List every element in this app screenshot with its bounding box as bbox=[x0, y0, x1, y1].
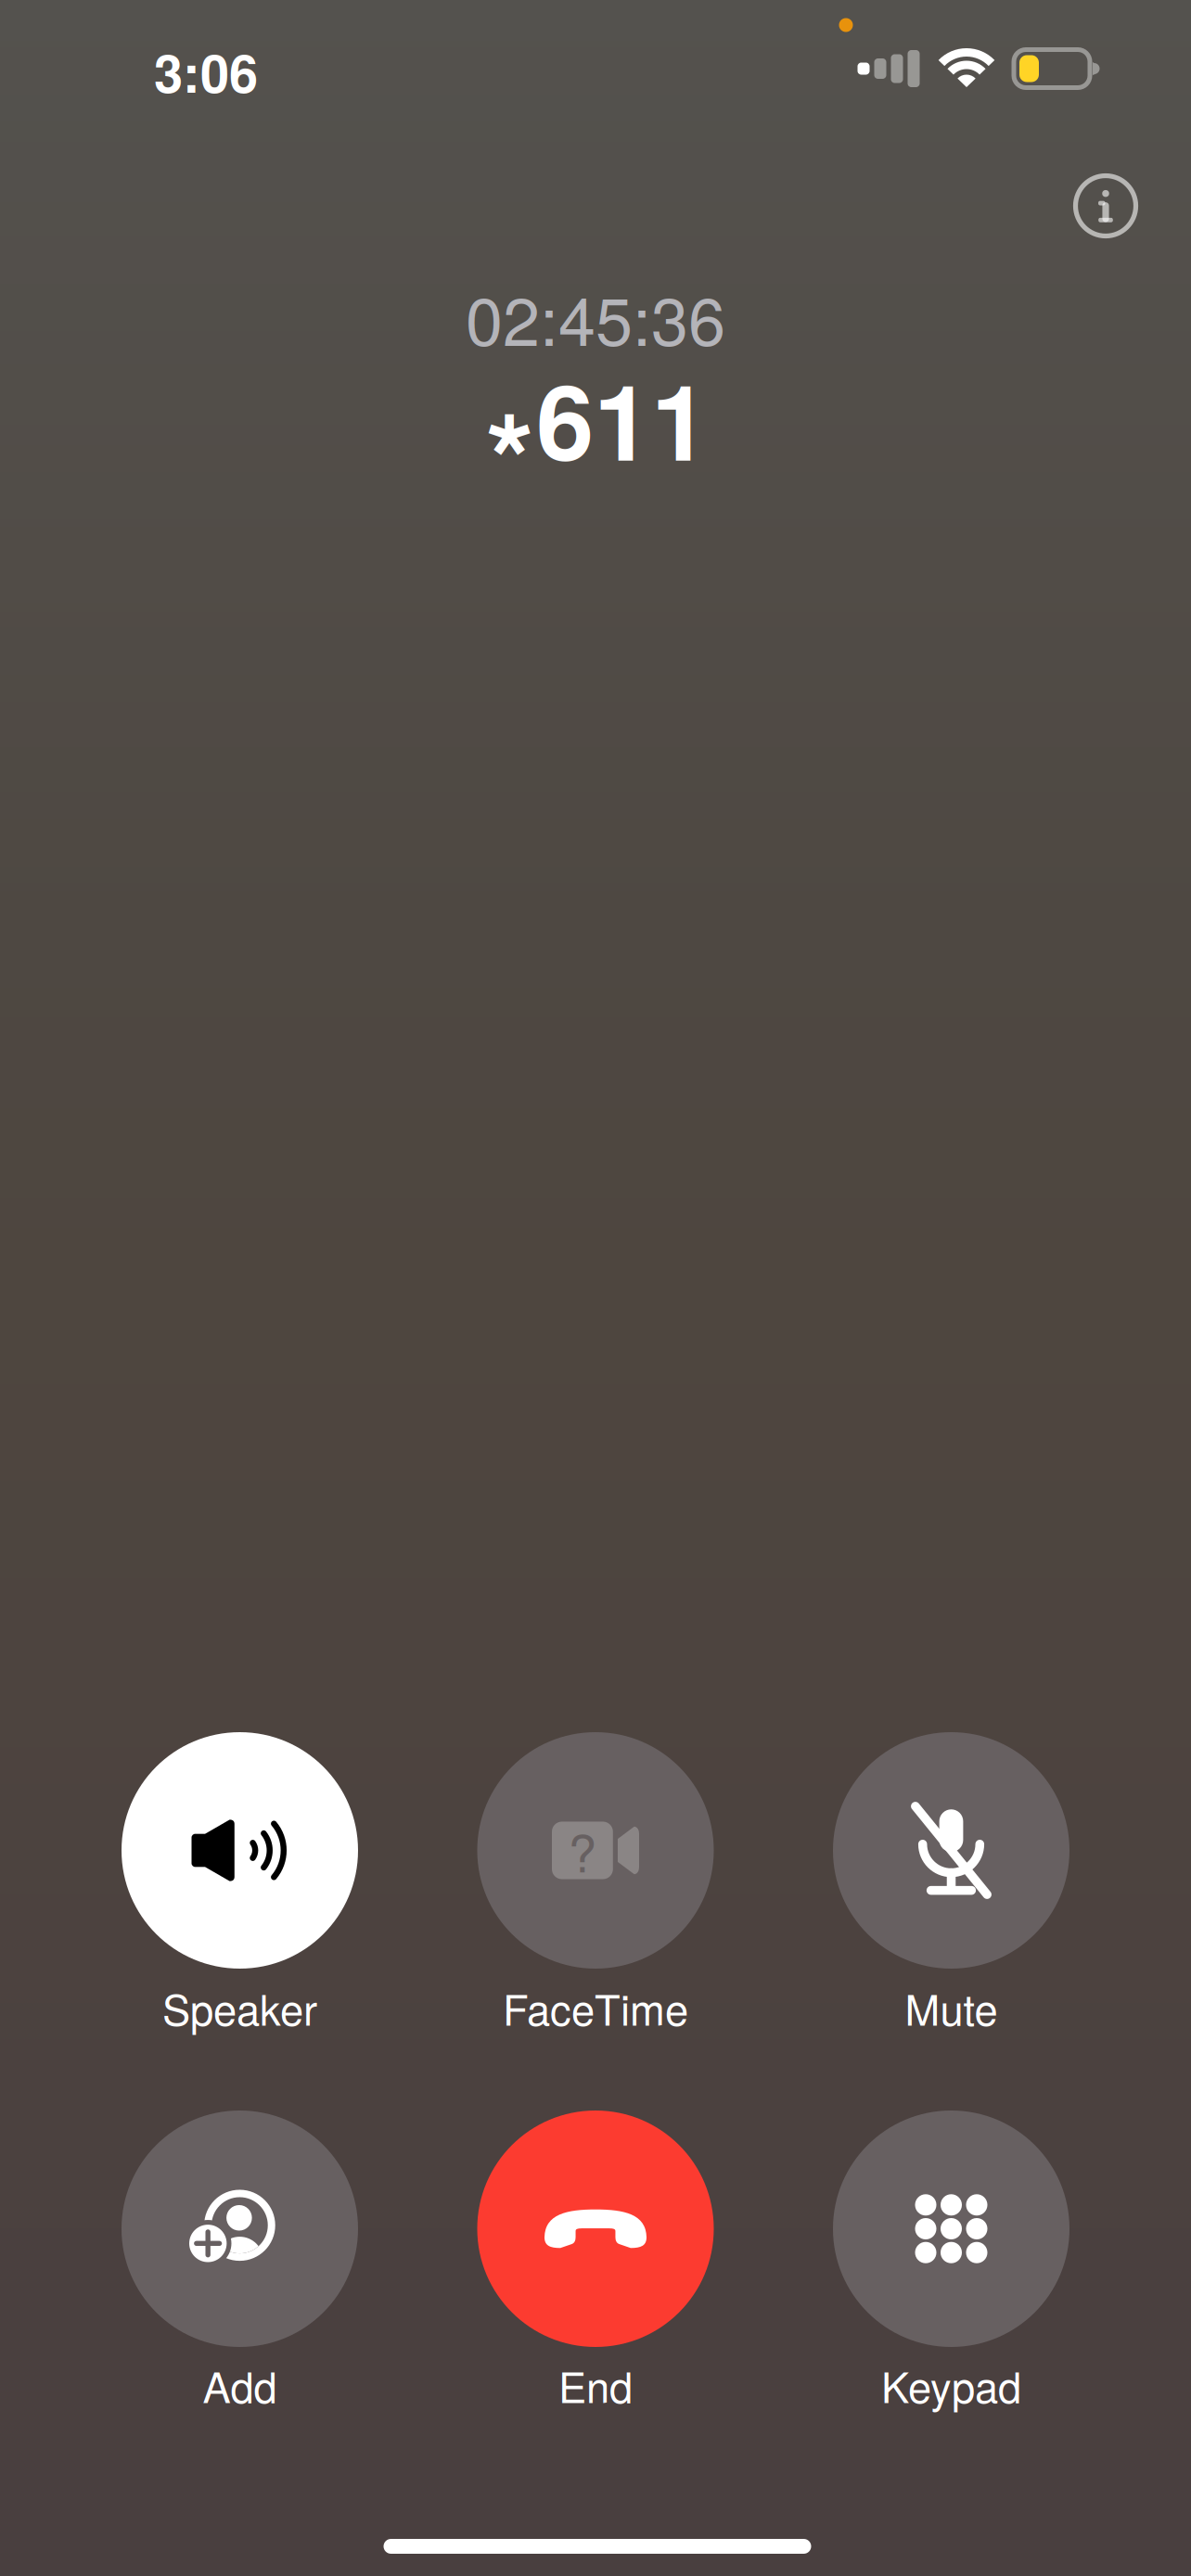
staticText: ∗611 bbox=[482, 344, 709, 493]
button[interactable]: Keypad bbox=[794, 2111, 1109, 2458]
staticText: 02:45:36 bbox=[466, 269, 725, 365]
button[interactable]: ? bbox=[438, 1732, 753, 2080]
button[interactable]: Mute bbox=[794, 1732, 1109, 2080]
button[interactable]: Add bbox=[82, 2111, 397, 2458]
staticText: 3:06 bbox=[154, 34, 258, 109]
staticText: Speaker bbox=[162, 1977, 317, 2038]
staticText: End bbox=[558, 2355, 633, 2415]
button[interactable]: Speaker bbox=[82, 1732, 397, 2080]
staticText: Add bbox=[203, 2355, 277, 2415]
staticText: ? bbox=[568, 1814, 597, 1887]
button[interactable]: End bbox=[438, 2111, 753, 2458]
button[interactable]: Call details bbox=[1045, 146, 1166, 266]
staticText: Keypad bbox=[881, 2355, 1021, 2415]
staticText: FaceTime bbox=[503, 1977, 688, 2038]
staticText: Mute bbox=[905, 1977, 998, 2038]
